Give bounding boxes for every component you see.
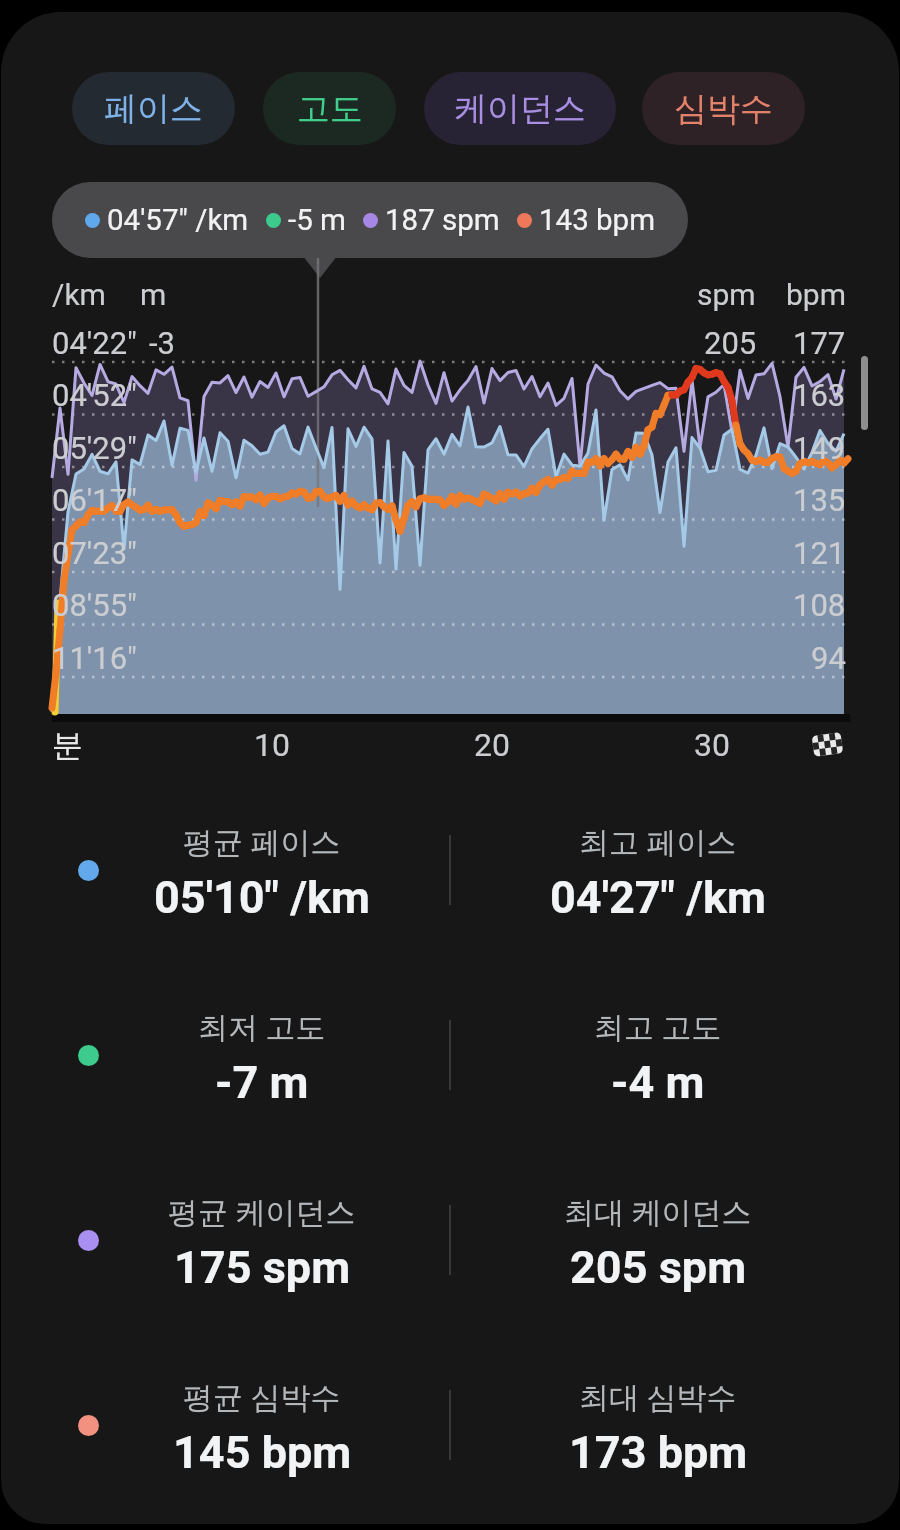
staticText: -3 [149, 325, 175, 361]
staticText: 20 [474, 726, 510, 764]
staticText: 평균 페이스 [183, 824, 341, 862]
staticText: 06'17" [52, 482, 138, 518]
button[interactable] [62, 795, 454, 945]
staticText: 최대 케이던스 [564, 1194, 752, 1232]
staticText: 05'10" /km [154, 871, 371, 924]
staticText: 04'52" [52, 377, 138, 413]
staticText: 최저 고도 [198, 1009, 326, 1047]
staticText: -7 m [215, 1056, 309, 1109]
button[interactable] [62, 1350, 454, 1500]
staticText: -4 m [611, 1056, 705, 1109]
staticText: 205 spm [570, 1241, 747, 1294]
staticText: 187 spm [385, 203, 500, 238]
button[interactable]: 케이던스 [424, 72, 616, 145]
button[interactable]: 고도 [263, 72, 396, 145]
staticText: spm [697, 277, 756, 312]
staticText: 175 spm [174, 1241, 351, 1294]
button[interactable]: 페이스 [72, 72, 235, 145]
button[interactable]: 심박수 [642, 72, 805, 145]
staticText: 108 [793, 587, 846, 623]
button[interactable] [62, 1165, 454, 1315]
staticText: m [140, 277, 167, 312]
staticText: 07'23" [52, 535, 138, 571]
staticText: 149 [793, 430, 846, 466]
staticText: 평균 케이던스 [168, 1194, 356, 1232]
staticText: 고도 [297, 88, 363, 130]
staticText: 143 bpm [539, 203, 656, 238]
staticText: 163 [793, 377, 846, 413]
staticText: 05'29" [52, 430, 138, 466]
button[interactable] [62, 980, 454, 1130]
staticText: 최대 심박수 [579, 1379, 737, 1417]
staticText: 08'55" [52, 587, 138, 623]
staticText: 173 bpm [569, 1426, 748, 1479]
staticText: 177 [793, 325, 846, 361]
staticText: 11'16" [52, 640, 138, 676]
staticText: 케이던스 [454, 88, 586, 130]
staticText: -5 m [288, 203, 346, 238]
staticText: 04'22" [52, 325, 138, 361]
staticText: 10 [254, 726, 290, 764]
staticText: 121 [793, 535, 846, 571]
staticText: 145 bpm [173, 1426, 352, 1479]
staticText: bpm [786, 277, 846, 312]
staticText: 04'27" /km [550, 871, 767, 924]
staticText: 30 [694, 726, 730, 764]
staticText: /km [52, 277, 106, 312]
staticText: 94 [811, 640, 846, 676]
staticText: 페이스 [104, 88, 203, 130]
staticText: 135 [793, 482, 846, 518]
staticText: 최고 고도 [594, 1009, 722, 1047]
staticText: 205 [704, 325, 757, 361]
staticText: 최고 페이스 [579, 824, 737, 862]
staticText: 평균 심박수 [183, 1379, 341, 1417]
staticText: 분 [52, 726, 83, 765]
staticText: 04'57" /km [107, 203, 249, 238]
staticText: 심박수 [674, 88, 773, 130]
